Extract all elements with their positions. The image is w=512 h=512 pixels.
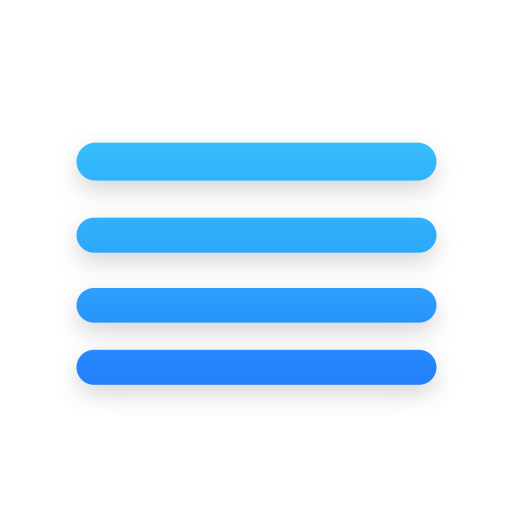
- button[interactable]: Fourth line: [76, 350, 436, 385]
- button[interactable]: First line: [76, 143, 436, 181]
- button[interactable]: Second line: [76, 218, 436, 253]
- button[interactable]: Third line: [76, 288, 436, 323]
